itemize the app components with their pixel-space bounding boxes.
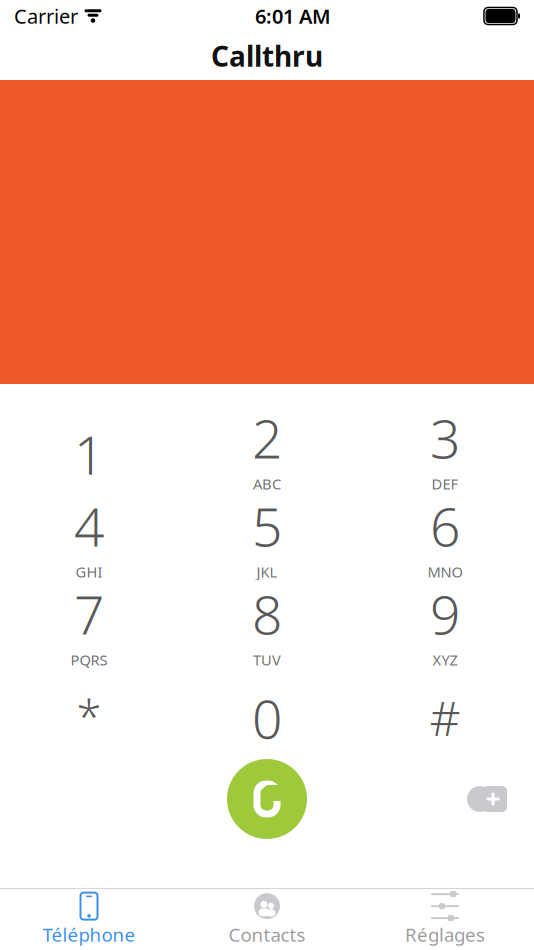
staticText: MNO: [427, 562, 462, 582]
staticText: 1: [74, 419, 104, 489]
staticText: Callthru: [211, 37, 323, 75]
staticText: Téléphone: [42, 922, 135, 947]
staticText: ABC: [253, 474, 281, 494]
button[interactable]: 1: [0, 404, 178, 492]
staticText: TUV: [253, 650, 281, 670]
staticText: 8: [252, 578, 282, 649]
button[interactable]: 8: [178, 580, 356, 668]
staticText: *: [76, 686, 101, 746]
staticText: JKL: [256, 562, 277, 582]
staticText: 7: [74, 578, 104, 649]
staticText: PQRS: [70, 650, 107, 670]
button[interactable]: Delete: [444, 759, 534, 839]
staticText: 9: [430, 578, 460, 649]
button[interactable]: 9: [356, 580, 534, 668]
button[interactable]: Téléphone: [0, 889, 178, 949]
staticText: 0: [252, 683, 282, 753]
staticText: 3: [430, 402, 460, 473]
staticText: DEF: [431, 474, 458, 494]
staticText: 4: [74, 490, 104, 561]
button[interactable]: 5: [178, 492, 356, 580]
button[interactable]: 6: [356, 492, 534, 580]
button[interactable]: 0: [178, 668, 356, 756]
button[interactable]: Réglages: [356, 889, 534, 949]
button[interactable]: 2: [178, 404, 356, 492]
button[interactable]: 7: [0, 580, 178, 668]
staticText: GHI: [75, 562, 102, 582]
staticText: Réglages: [405, 922, 485, 947]
staticText: Carrier: [14, 3, 78, 29]
staticText: 6: [430, 490, 460, 561]
staticText: #: [429, 686, 460, 749]
button[interactable]: 3: [356, 404, 534, 492]
staticText: 5: [252, 490, 282, 561]
staticText: XYZ: [432, 650, 457, 670]
button[interactable]: Contacts: [178, 889, 356, 949]
staticText: 6:01 AM: [255, 3, 331, 29]
button[interactable]: Call: [227, 759, 307, 839]
button[interactable]: *: [0, 668, 178, 756]
button[interactable]: #: [356, 668, 534, 756]
staticText: Contacts: [228, 922, 305, 947]
staticText: 2: [252, 402, 282, 473]
button[interactable]: 4: [0, 492, 178, 580]
